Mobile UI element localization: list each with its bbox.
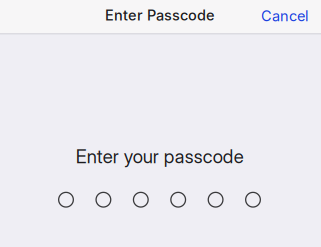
staticText: Enter Passcode: [105, 6, 215, 24]
staticText: Enter your passcode: [76, 145, 244, 168]
staticText: Cancel: [261, 7, 309, 25]
button[interactable]: Enter your passcode: [0, 146, 321, 208]
button[interactable]: Cancel: [249, 0, 321, 32]
